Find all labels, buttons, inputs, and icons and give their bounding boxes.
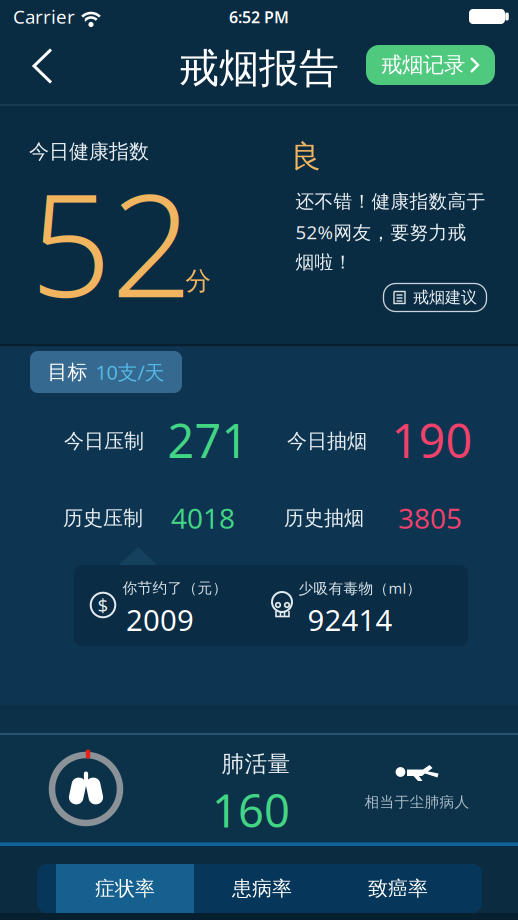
staticText: 你节约了（元） xyxy=(122,579,227,597)
button[interactable]: 戒烟记录 xyxy=(366,45,495,85)
staticText: 190 xyxy=(391,409,472,471)
staticText: 今日抽烟 xyxy=(287,429,367,453)
staticText: 6:52 PM xyxy=(229,6,289,28)
staticText: 致癌率 xyxy=(368,876,428,901)
staticText: 历史压制 xyxy=(63,506,143,530)
staticText: 戒烟记录 xyxy=(381,52,465,78)
staticText: 160 xyxy=(212,780,290,840)
staticText: 症状率 xyxy=(95,876,155,901)
staticText: 271 xyxy=(167,409,248,471)
button[interactable]: 患病率 xyxy=(193,864,331,913)
staticText: Carrier xyxy=(13,4,75,29)
staticText: 2009 xyxy=(126,600,194,639)
staticText: 良 xyxy=(290,138,321,175)
staticText: 92414 xyxy=(307,600,392,639)
staticText: 3805 xyxy=(398,499,462,537)
button[interactable]: 戒烟建议 xyxy=(383,283,486,311)
staticText: 少吸有毒物（ml） xyxy=(298,578,421,598)
staticText: 10支/天 xyxy=(95,359,164,385)
staticText: 肺活量 xyxy=(221,750,290,778)
staticText: 相当于尘肺病人 xyxy=(364,793,469,811)
button[interactable]: Back xyxy=(20,43,64,88)
staticText: 目标 xyxy=(47,360,87,384)
staticText: 52 xyxy=(30,147,192,337)
staticText: $ xyxy=(97,593,108,617)
staticText: 52%网友，要努力戒 xyxy=(295,220,466,244)
button[interactable]: 致癌率 xyxy=(329,864,467,913)
staticText: 4018 xyxy=(171,499,235,537)
button[interactable]: 症状率 xyxy=(56,864,194,913)
staticText: 历史抽烟 xyxy=(284,506,364,530)
staticText: 戒烟建议 xyxy=(413,288,477,307)
button[interactable]: 目标 xyxy=(30,351,182,393)
staticText: 戒烟报告 xyxy=(179,44,339,93)
staticText: 今日健康指数 xyxy=(29,139,149,164)
staticText: 患病率 xyxy=(232,876,292,901)
staticText: 还不错！健康指数高于 xyxy=(295,190,485,213)
staticText: 烟啦！ xyxy=(295,251,352,274)
staticText: 今日压制 xyxy=(64,429,144,453)
staticText: 分 xyxy=(185,265,210,296)
